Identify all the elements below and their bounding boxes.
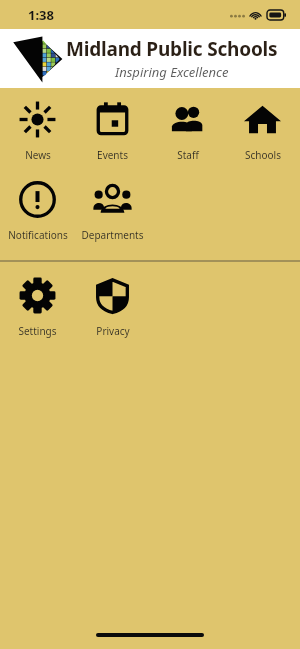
staticText: News bbox=[25, 148, 51, 162]
button[interactable]: Staff bbox=[150, 98, 225, 164]
other: Schools bbox=[243, 100, 282, 139]
staticText: Privacy bbox=[96, 324, 130, 338]
staticText: Inspiring Excellence bbox=[115, 63, 229, 81]
staticText: 1:38 bbox=[28, 6, 54, 24]
button[interactable]: Settings bbox=[0, 274, 75, 340]
staticText: Midland Public Schools bbox=[66, 36, 278, 62]
other: Privacy bbox=[93, 276, 132, 315]
button[interactable]: Schools bbox=[225, 98, 300, 164]
staticText: Schools bbox=[245, 148, 281, 162]
button[interactable]: Events bbox=[75, 98, 150, 164]
button[interactable]: Notifications bbox=[0, 178, 75, 244]
other: Staff bbox=[168, 100, 207, 139]
other: News bbox=[18, 100, 57, 139]
button[interactable]: Privacy bbox=[75, 274, 150, 340]
other: Departments bbox=[93, 180, 132, 219]
staticText: Settings bbox=[18, 324, 57, 338]
button[interactable]: Departments bbox=[75, 178, 150, 244]
staticText: Events bbox=[97, 148, 128, 162]
other: Notifications bbox=[18, 180, 57, 219]
staticText: Notifications bbox=[8, 228, 68, 242]
button[interactable]: News bbox=[0, 98, 75, 164]
other: Events bbox=[93, 100, 132, 139]
other: Settings bbox=[18, 276, 57, 315]
staticText: Departments bbox=[81, 228, 144, 242]
staticText: Staff bbox=[177, 148, 199, 162]
